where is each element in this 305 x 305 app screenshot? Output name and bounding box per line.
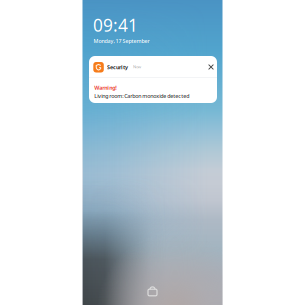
button[interactable]: Dismiss notification [207,63,215,71]
staticText: Security [107,64,128,71]
staticText: Warning! [94,84,117,91]
staticText: Now [133,64,141,69]
staticText: Monday, 17 September [93,37,149,45]
staticText: Living room: Carbon monoxide detected [94,92,189,99]
staticText: 09:41 [93,13,138,36]
